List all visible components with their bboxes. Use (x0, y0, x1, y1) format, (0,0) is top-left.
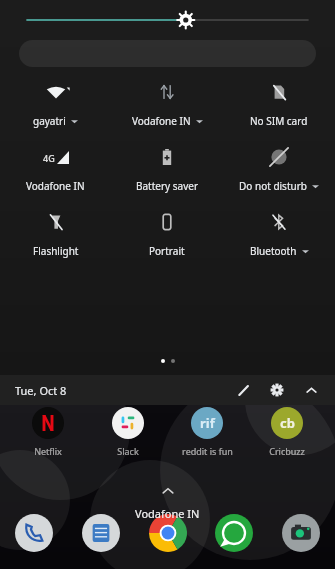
button[interactable]: Edit (229, 376, 257, 404)
button[interactable]: Bluetooth (223, 207, 335, 260)
button[interactable]: Settings (263, 376, 291, 404)
staticText: No SIM card (250, 114, 308, 128)
staticText: Tue, Oct 8 (15, 383, 67, 398)
staticText: gayatri (33, 114, 66, 128)
button[interactable]: Slack (91, 405, 165, 457)
button[interactable]: rif (170, 405, 244, 457)
button[interactable]: Phone (12, 511, 56, 555)
staticText: Portrait (149, 244, 185, 258)
button[interactable]: Camera (279, 511, 323, 555)
button[interactable]: Vodafone IN (111, 77, 223, 130)
staticText: Vodafone IN (26, 179, 85, 193)
staticText: cb (280, 414, 295, 432)
button[interactable]: Flashlight (0, 207, 111, 260)
button[interactable]: Collapse (297, 376, 325, 404)
staticText: reddit is fun (182, 445, 233, 457)
button[interactable]: gayatri (0, 77, 111, 130)
button[interactable]: Chrome (146, 511, 190, 555)
staticText: rif (200, 414, 215, 432)
button[interactable]: 4G (0, 142, 111, 195)
button[interactable]: No SIM card (223, 77, 335, 130)
button[interactable]: Do not disturb (223, 142, 335, 195)
staticText: Cricbuzz (269, 445, 305, 457)
staticText: Slack (117, 445, 139, 457)
staticText: Flashlight (33, 244, 79, 258)
button[interactable]: cb (250, 405, 324, 457)
button[interactable]: Portrait (111, 207, 223, 260)
staticText: Do not disturb (239, 179, 307, 193)
button[interactable]: Brightness (27, 9, 308, 31)
staticText: Battery saver (136, 179, 199, 193)
button[interactable]: Messages (79, 511, 123, 555)
staticText: Bluetooth (250, 244, 297, 258)
staticText: 4G (43, 152, 55, 164)
button[interactable]: Netflix (11, 405, 85, 457)
staticText: Vodafone IN (132, 114, 191, 128)
staticText: Netflix (34, 445, 62, 457)
staticText: Vodafone IN (135, 506, 200, 521)
button[interactable]: WhatsApp (212, 511, 256, 555)
button[interactable]: Battery saver (111, 142, 223, 195)
